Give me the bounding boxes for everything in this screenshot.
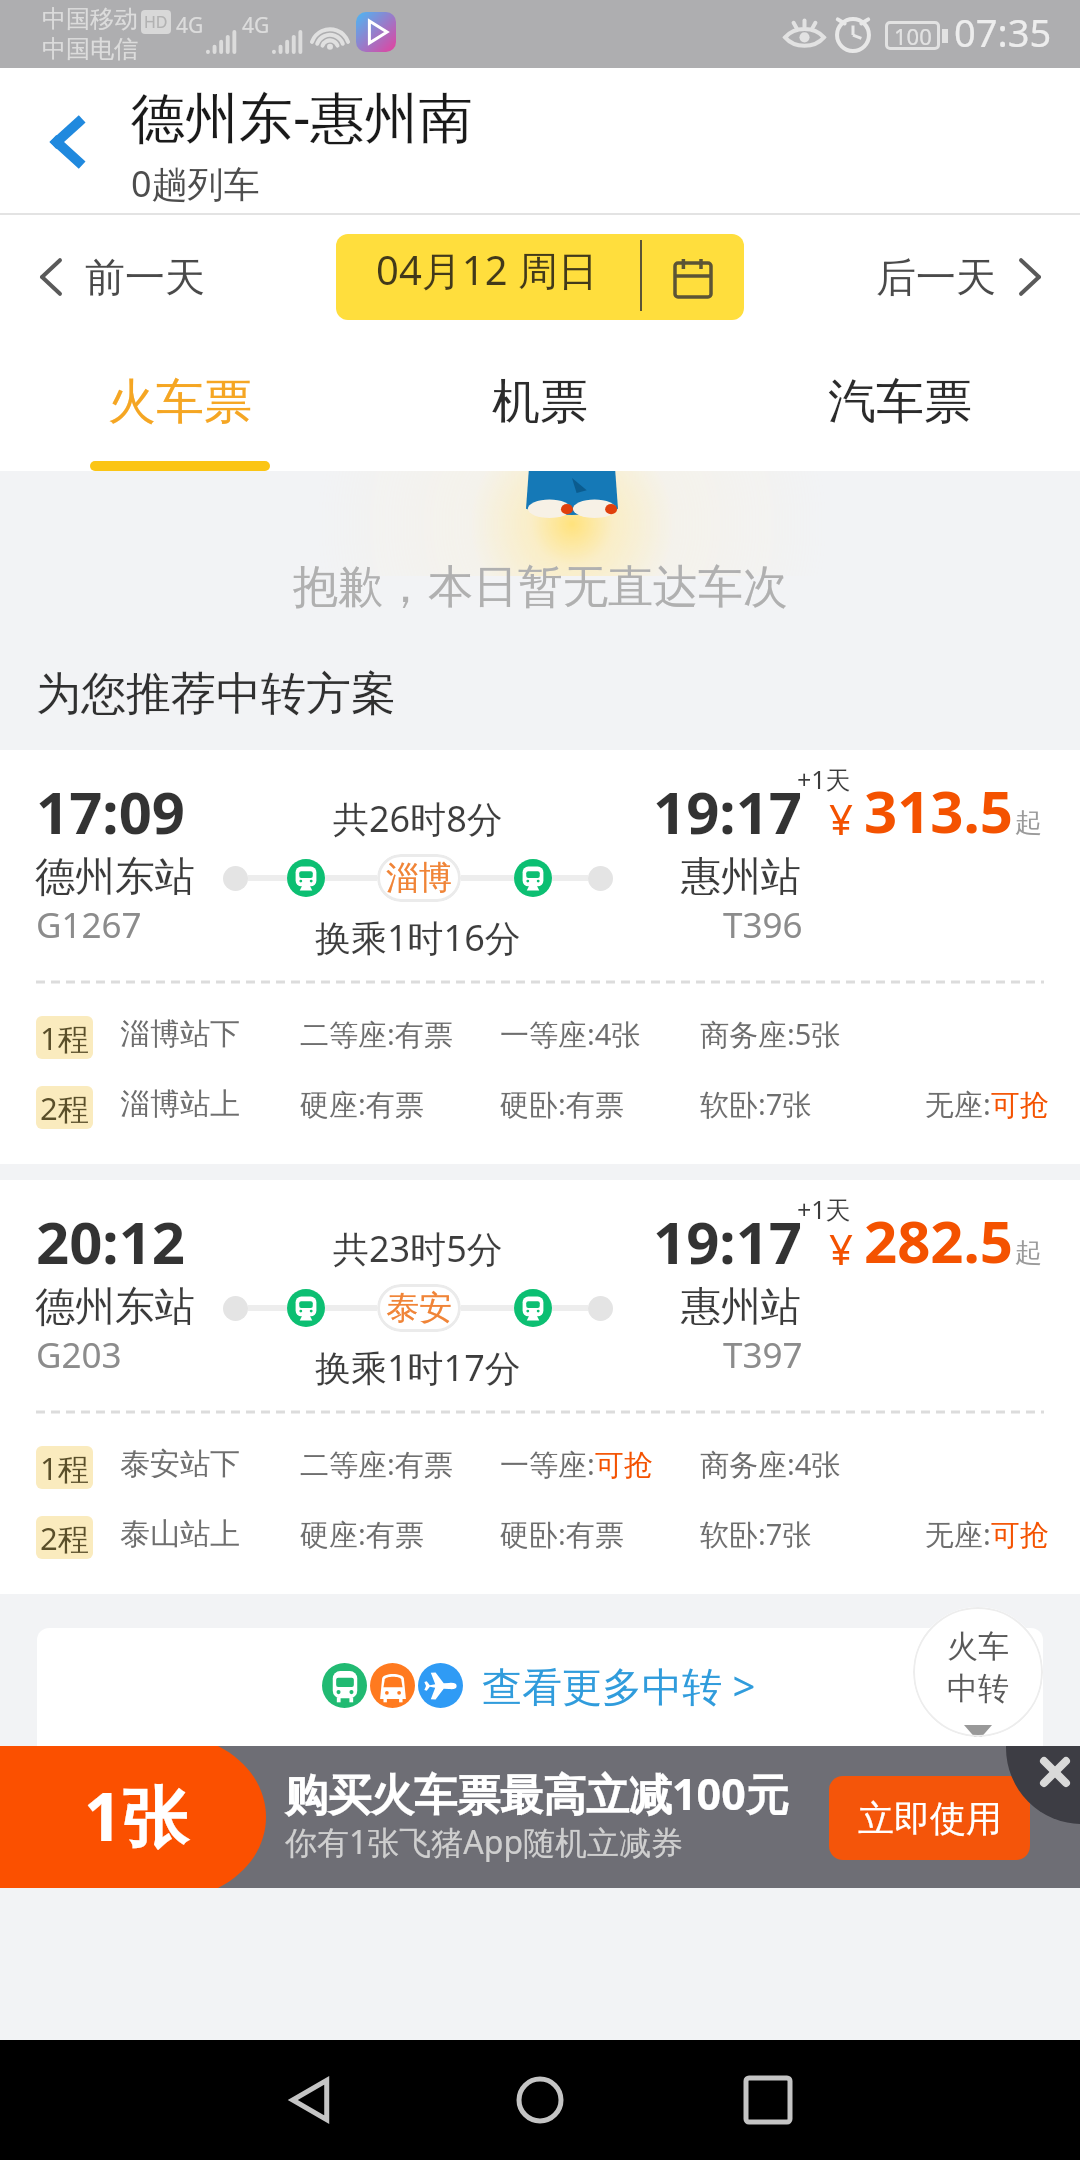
staticText: 无座:可抢 — [925, 1084, 1049, 1124]
staticText: 二等座:有票 — [300, 1444, 453, 1484]
staticText: 2程 — [40, 1087, 89, 1129]
button[interactable]: 机票 — [360, 327, 720, 471]
staticText: T397 — [723, 1331, 803, 1379]
staticText: 软卧:7张 — [700, 1514, 812, 1554]
staticText: 德州东站 — [35, 851, 195, 901]
staticText: G1267 — [36, 901, 142, 949]
staticText: 商务座:5张 — [700, 1014, 841, 1054]
button[interactable]: 前一天 — [37, 232, 205, 322]
staticText: 二等座:有票 — [300, 1014, 453, 1054]
staticText: 德州东站 — [35, 1281, 195, 1331]
staticText: 17:09 — [36, 772, 186, 851]
button[interactable]: 返回 — [12, 87, 122, 197]
button[interactable]: 汽车票 — [720, 327, 1080, 471]
staticText: 为您推荐中转方案 — [36, 666, 396, 723]
staticText: 立即使用 — [858, 1796, 1002, 1841]
staticText: 后一天 — [876, 252, 996, 302]
staticText: 共26时8分 — [333, 794, 503, 843]
staticText: 泰安站下 — [120, 1445, 240, 1483]
staticText: 淄博 — [386, 857, 452, 899]
staticText: 惠州站 — [681, 1281, 801, 1331]
staticText: 硬卧:有票 — [500, 1514, 624, 1554]
staticText: 19:17 — [653, 1202, 803, 1281]
staticText: T396 — [723, 901, 803, 949]
staticText: 查看更多中转 > — [482, 1658, 756, 1713]
staticText: 换乘1时16分 — [315, 913, 521, 962]
staticText: 你有1张飞猪App随机立减券 — [285, 1820, 684, 1864]
staticText: 抱歉，本日暂无直达车次 — [293, 559, 788, 616]
staticText: 313.5 — [864, 771, 1014, 850]
staticText: 2程 — [40, 1517, 89, 1559]
staticText: 硬座:有票 — [300, 1514, 424, 1554]
staticText: 泰山站上 — [120, 1515, 240, 1553]
staticText: 无座:可抢 — [925, 1514, 1049, 1554]
staticText: 0趟列车 — [131, 159, 260, 208]
staticText: 淄博站上 — [120, 1085, 240, 1123]
staticText: 汽车票 — [828, 372, 972, 432]
staticText: 购买火车票最高立减100元 — [285, 1764, 789, 1823]
staticText: ¥ — [829, 1220, 854, 1277]
staticText: 100 — [894, 21, 932, 50]
staticText: 惠州站 — [681, 851, 801, 901]
button[interactable]: 返回 — [272, 2060, 352, 2140]
button[interactable]: 火车票 — [0, 327, 360, 471]
button[interactable]: 主页 — [500, 2060, 580, 2140]
button[interactable]: 关闭 — [980, 1746, 1080, 1846]
staticText: 20:12 — [36, 1202, 186, 1281]
staticText: 机票 — [492, 372, 588, 432]
staticText: 硬卧:有票 — [500, 1084, 624, 1124]
staticText: 282.5 — [864, 1201, 1014, 1280]
staticText: 德州东-惠州南 — [131, 79, 473, 153]
staticText: 前一天 — [85, 252, 205, 302]
staticText: 中转 — [947, 1669, 1009, 1708]
staticText: 共23时5分 — [333, 1224, 503, 1273]
staticText: +1天 — [797, 762, 851, 796]
staticText: 07:35 — [954, 6, 1052, 58]
staticText: 19:17 — [653, 772, 803, 851]
staticText: +1天 — [797, 1192, 851, 1226]
staticText: 火车票 — [108, 372, 252, 432]
button[interactable]: 17:09 — [0, 750, 1080, 1164]
staticText: 起 — [1015, 1236, 1042, 1270]
button[interactable]: 04月12 周日 — [336, 234, 744, 320]
staticText: 一等座:4张 — [500, 1014, 641, 1054]
staticText: 1程 — [40, 1447, 89, 1489]
staticText: 中国电信 — [42, 34, 138, 64]
staticText: 泰安 — [386, 1287, 452, 1329]
button[interactable]: 后一天 — [876, 232, 1044, 322]
staticText: 04月12 周日 — [376, 242, 598, 297]
staticText: 硬座:有票 — [300, 1084, 424, 1124]
staticText: 中国移动 — [42, 4, 138, 34]
button[interactable]: 最近应用 — [728, 2060, 808, 2140]
staticText: 一等座:可抢 — [500, 1444, 653, 1484]
staticText: 起 — [1015, 806, 1042, 840]
staticText: 1张 — [84, 1770, 188, 1860]
staticText: 商务座:4张 — [700, 1444, 841, 1484]
staticText: ¥ — [829, 790, 854, 847]
button[interactable]: 20:12 — [0, 1180, 1080, 1594]
staticText: 4G — [176, 11, 204, 40]
staticText: 淄博站下 — [120, 1015, 240, 1053]
staticText: 4G — [242, 11, 270, 40]
staticText: 火车 — [947, 1627, 1009, 1666]
staticText: 换乘1时17分 — [315, 1343, 521, 1392]
staticText: 软卧:7张 — [700, 1084, 812, 1124]
staticText: HD — [144, 11, 168, 33]
button[interactable]: 立即使用 — [829, 1776, 1030, 1860]
button[interactable]: 火车 — [913, 1607, 1043, 1737]
button[interactable]: 查看更多中转 > — [37, 1628, 1043, 1746]
button[interactable]: 1张 — [0, 1746, 1080, 1888]
staticText: G203 — [36, 1331, 122, 1379]
staticText: 1程 — [40, 1017, 89, 1059]
